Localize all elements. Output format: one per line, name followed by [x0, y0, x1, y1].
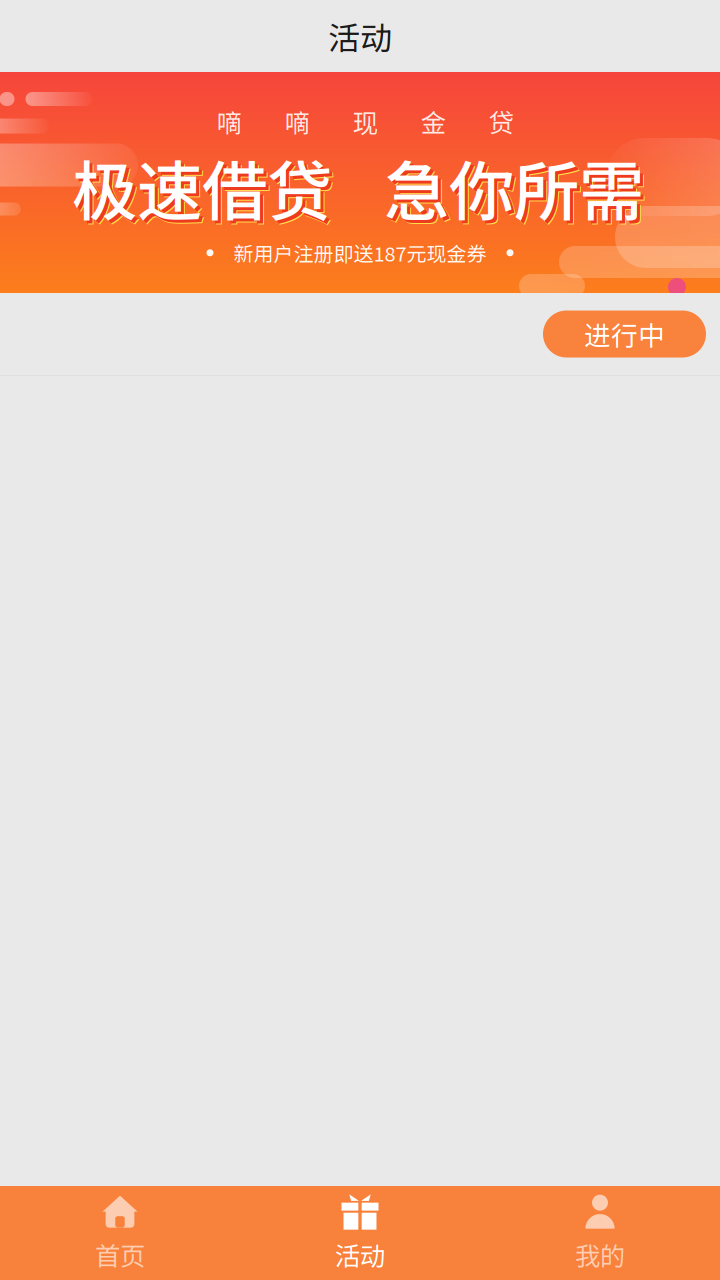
staticText: 极速借贷: [72, 140, 332, 234]
staticText: 首页: [95, 1236, 145, 1273]
staticText: 进行中: [584, 315, 665, 353]
button[interactable]: 我的: [480, 1193, 720, 1273]
staticText: 极速借贷: [76, 144, 336, 238]
button[interactable]: 进行中: [543, 310, 706, 357]
staticText: 嘀嘀现金贷: [216, 103, 513, 140]
staticText: 极速借贷: [75, 143, 335, 237]
staticText: 急你所需: [388, 144, 648, 238]
staticText: 急你所需: [384, 140, 644, 234]
button[interactable]: 活动: [240, 1193, 480, 1273]
staticText: 活动: [335, 1236, 385, 1273]
staticText: 新用户注册即送187元现金券: [233, 238, 486, 267]
button[interactable]: 首页: [0, 1193, 240, 1273]
staticText: 活动: [328, 13, 392, 59]
staticText: 我的: [575, 1236, 625, 1273]
staticText: 急你所需: [387, 143, 647, 237]
